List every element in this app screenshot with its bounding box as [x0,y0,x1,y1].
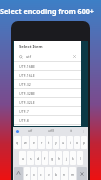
button[interactable]: Google [15,129,20,134]
staticText: Select Item [19,44,43,50]
staticText: c [40,172,42,177]
staticText: x [33,172,35,177]
staticText: Select encoding from 600+ options [0,6,101,16]
button[interactable]: utf [14,52,81,61]
staticText: e [33,140,35,145]
staticText: g [51,156,54,161]
staticText: utf [26,54,32,59]
button[interactable]: UTF-7 [14,107,81,115]
staticText: y [55,140,57,145]
button[interactable]: Shift [14,167,23,180]
button[interactable]: UTF-16LE [14,71,81,79]
staticText: m [71,172,75,177]
staticText: utf8 [48,129,55,133]
button[interactable]: n [61,167,68,180]
button[interactable]: l [77,151,83,165]
button[interactable]: b [53,167,60,180]
staticText: UTF-32LE [19,100,35,105]
staticText: d [37,156,40,161]
staticText: UTF-16LE [19,73,35,78]
button[interactable]: z [24,167,30,180]
button[interactable]: u [60,136,66,149]
button[interactable]: Clear search [72,54,77,59]
button[interactable]: utf [20,127,41,135]
button[interactable]: x [31,167,37,180]
button[interactable]: k [70,151,76,165]
button[interactable]: j [63,151,69,165]
staticText: r [41,140,43,145]
staticText: UTF-16BE [19,64,36,69]
staticText: t [48,140,50,145]
staticText: z [26,172,28,177]
staticText: UTF-8 [19,118,29,123]
staticText: i [70,140,71,145]
button[interactable]: p [81,136,87,149]
button[interactable]: d [35,151,41,165]
staticText: j [66,156,67,161]
button[interactable]: y [53,136,59,149]
button[interactable]: o [74,136,80,149]
button[interactable]: UTF-8 [14,116,81,124]
button[interactable]: UTF-32BE [14,89,81,97]
button[interactable]: UTF-32LE [14,98,81,106]
staticText: v [48,172,50,177]
staticText: UTF-7 [19,109,29,114]
button[interactable]: f [42,151,48,165]
button[interactable]: w [22,136,29,149]
button[interactable]: UTF-16BE [14,62,81,70]
button[interactable]: utf8 [41,127,61,135]
staticText: u [62,140,65,145]
button[interactable]: h [56,151,62,165]
button[interactable]: g [49,151,55,165]
button[interactable]: t [46,136,52,149]
button[interactable]: More options [81,129,86,134]
staticText: UTF-32 [19,82,31,87]
staticText: k [72,156,74,161]
staticText: w [24,140,27,145]
button[interactable]: q [14,136,21,149]
staticText: UTF-32BE [19,91,36,96]
button[interactable]: r [38,136,45,149]
button[interactable]: Backspace [77,167,87,180]
button[interactable]: i [67,136,73,149]
button[interactable]: c [38,167,44,180]
staticText: s [30,156,32,161]
button[interactable]: a [19,151,26,165]
button[interactable]: e [30,136,37,149]
staticText: p [83,140,86,145]
button[interactable]: v [45,167,52,180]
staticText: f [44,156,46,161]
staticText: l [80,156,81,161]
staticText: o [76,140,79,145]
button[interactable]: it [61,127,81,135]
button[interactable]: s [27,151,34,165]
button[interactable]: m [69,167,76,180]
staticText: it [70,129,72,133]
staticText: utf [28,129,33,133]
staticText: q [16,140,19,145]
staticText: b [55,172,58,177]
button[interactable]: UTF-32 [14,80,81,88]
staticText: a [22,156,24,161]
staticText: n [63,172,66,177]
staticText: h [58,156,61,161]
